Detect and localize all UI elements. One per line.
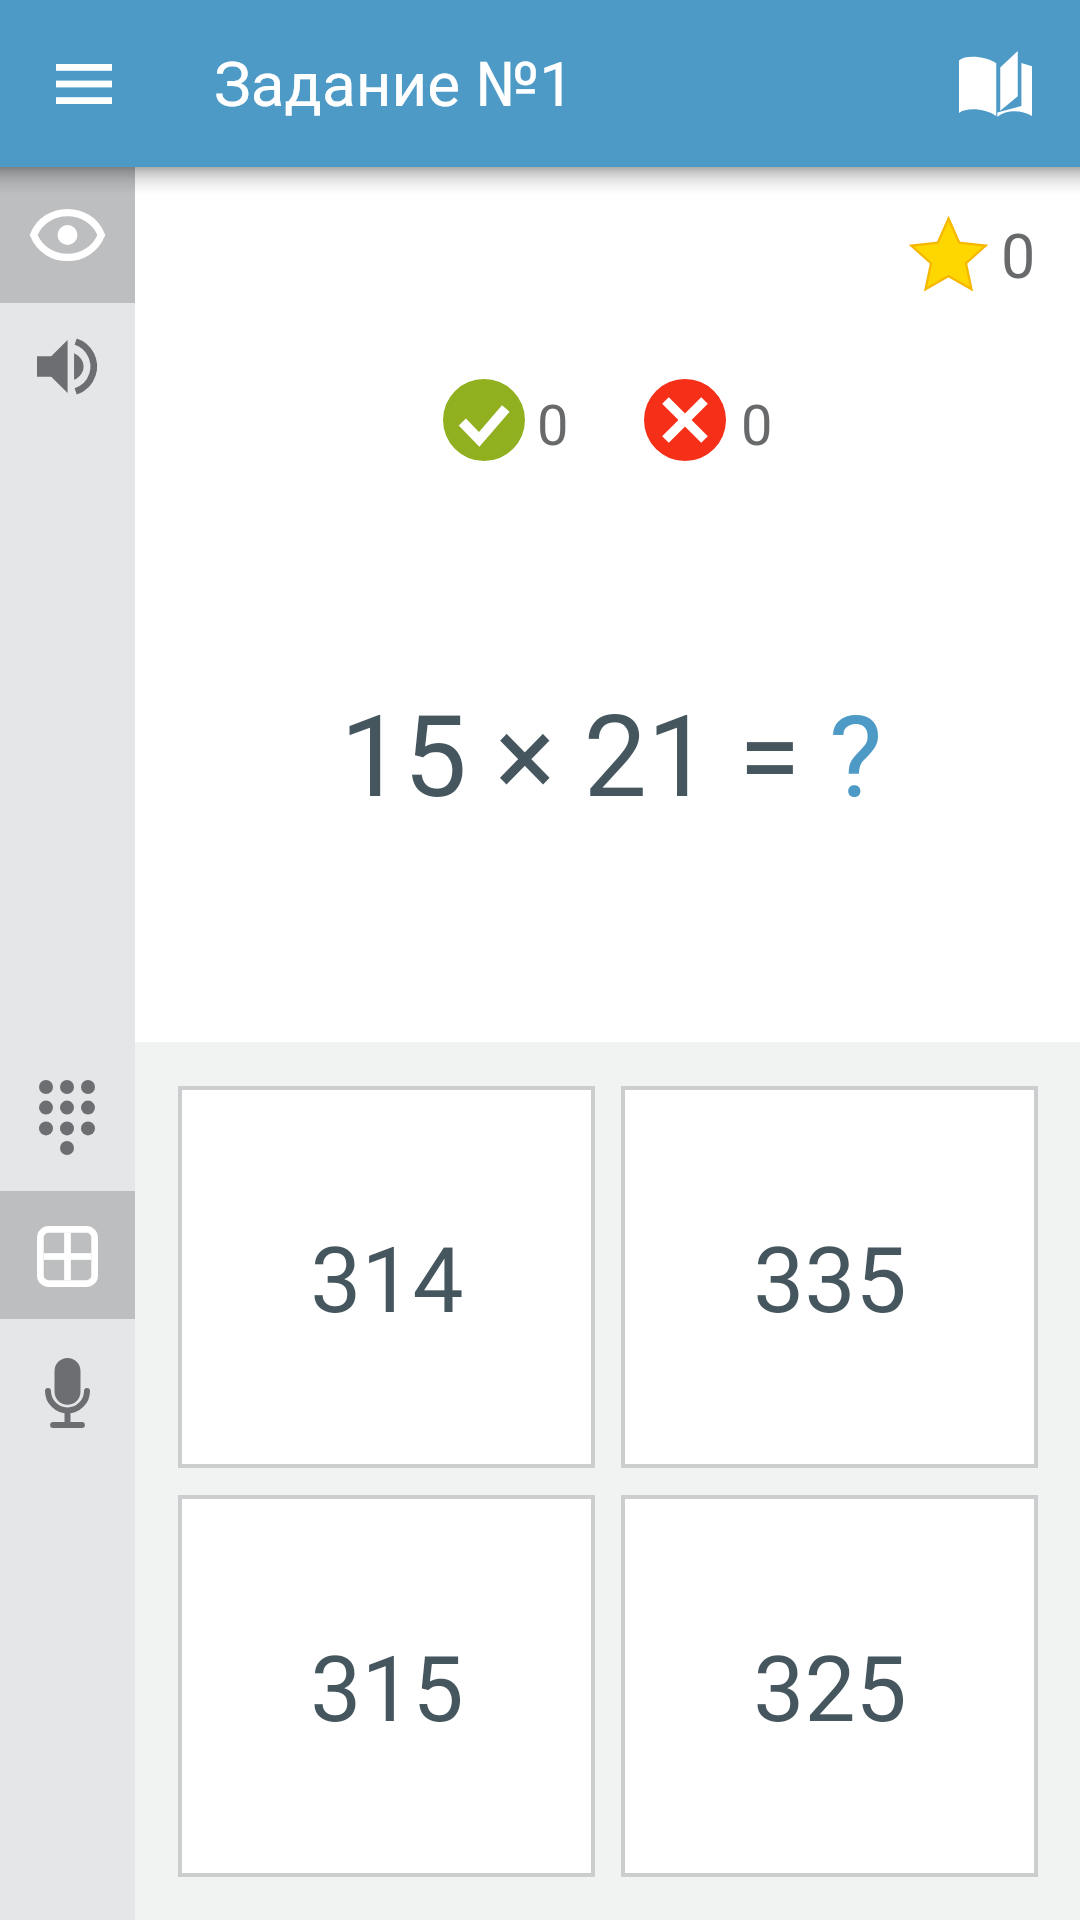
button[interactable]: 314 (178, 1086, 595, 1468)
staticText: 0 (537, 393, 569, 459)
button[interactable]: Tool (30, 209, 105, 261)
staticText: 325 (753, 1637, 907, 1744)
staticText: 0 (1001, 221, 1036, 292)
button[interactable]: 335 (621, 1086, 1038, 1468)
button[interactable]: Tool (37, 337, 97, 396)
staticText: 15 × 21 = (340, 691, 829, 823)
button[interactable]: Tool (37, 1226, 98, 1287)
button[interactable]: Tool (45, 1358, 90, 1428)
staticText: 315 (310, 1637, 464, 1744)
button[interactable]: Show answer (0, 167, 135, 303)
button[interactable]: Tool (39, 1080, 95, 1155)
button[interactable]: 325 (621, 1495, 1038, 1877)
staticText: 335 (753, 1228, 907, 1335)
button[interactable]: Multiple choice mode (0, 1191, 135, 1319)
button[interactable]: Open reference book (940, 28, 1052, 140)
staticText: Задание №1 (214, 48, 575, 121)
button[interactable]: Open navigation menu (28, 28, 140, 140)
staticText: 0 (741, 393, 773, 459)
button[interactable]: 315 (178, 1495, 595, 1877)
staticText: ? (829, 691, 883, 823)
staticText: 314 (310, 1228, 464, 1335)
